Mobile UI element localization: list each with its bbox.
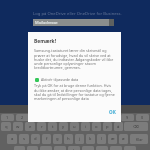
staticText: q [5, 124, 8, 130]
button[interactable]: m [96, 146, 108, 150]
staticText: å [117, 124, 120, 130]
staticText: k [89, 136, 92, 142]
staticText: OK [109, 109, 116, 115]
button[interactable]: , [110, 146, 122, 150]
staticText: e [29, 124, 32, 130]
button[interactable]: v [54, 146, 66, 150]
button[interactable]: z [14, 146, 25, 150]
staticText: u [73, 124, 76, 130]
button[interactable]: x [27, 146, 38, 150]
button[interactable]: Aktivér tilpassede data [34, 77, 79, 82]
staticText: Tryk på OK for at bruge denne funktion. … [34, 83, 116, 101]
button[interactable]: 9 [121, 114, 134, 121]
staticText: Samsung-tastaturet lærer din skrivestil … [34, 48, 116, 70]
staticText: æ [111, 136, 115, 142]
staticText: r [41, 124, 43, 130]
button[interactable]: s [19, 134, 29, 144]
staticText: b [73, 148, 76, 150]
button[interactable]: f [42, 134, 51, 144]
staticText: h [67, 136, 70, 142]
staticText: ⌫ [133, 124, 139, 129]
button[interactable]: b [68, 146, 80, 150]
staticText: p [106, 124, 109, 130]
button[interactable]: r [37, 122, 46, 131]
button[interactable]: o [92, 122, 101, 131]
staticText: 2 [21, 115, 24, 120]
button[interactable]: OK [109, 109, 116, 115]
button[interactable]: 0 [136, 114, 149, 121]
staticText: Mailadresse [35, 20, 58, 25]
staticText: y [62, 124, 65, 130]
staticText: t [52, 124, 54, 130]
button[interactable]: h [64, 134, 73, 144]
button[interactable]: w [13, 122, 23, 131]
staticText: j [79, 136, 81, 142]
staticText: 9 [126, 115, 129, 120]
staticText: a [11, 136, 14, 142]
button[interactable]: Klar [130, 134, 148, 144]
button[interactable]: ø [119, 134, 128, 144]
button[interactable]: Mailadresse [33, 19, 114, 26]
staticText: i [85, 124, 87, 130]
staticText: o [95, 124, 98, 130]
button[interactable]: g [53, 134, 62, 144]
staticText: d [34, 136, 37, 142]
button[interactable]: l [97, 134, 106, 144]
staticText: 0 [141, 115, 144, 120]
button[interactable]: k [86, 134, 95, 144]
staticText: Bemærk! [34, 38, 57, 45]
staticText: g [56, 136, 59, 142]
staticText: l [101, 136, 103, 142]
button[interactable]: å [114, 122, 123, 131]
button[interactable]: p [103, 122, 112, 131]
staticText: s [23, 136, 26, 142]
staticText: ø [122, 136, 125, 142]
button[interactable]: t [48, 122, 57, 131]
staticText: w [16, 124, 20, 130]
button[interactable]: . [124, 146, 136, 150]
button[interactable]: y [59, 122, 68, 131]
button[interactable]: j [75, 134, 84, 144]
button[interactable]: u [70, 122, 79, 131]
staticText: f [46, 136, 48, 142]
button[interactable]: c [40, 146, 52, 150]
staticText: 1 [6, 115, 9, 120]
button[interactable]: i [81, 122, 90, 131]
button[interactable]: 1 [1, 114, 14, 121]
staticText: Klar [136, 137, 143, 142]
staticText: Log på OneDrive eller OneDrive for Busin… [33, 11, 122, 17]
staticText: Aktivér tilpassede data [41, 77, 79, 82]
button[interactable]: Slet [124, 122, 148, 131]
button[interactable]: n [82, 146, 94, 150]
button[interactable]: q [1, 122, 11, 131]
button[interactable]: 2 [16, 114, 29, 121]
button[interactable]: e [25, 122, 35, 131]
button[interactable]: a [7, 134, 17, 144]
button[interactable]: æ [108, 134, 117, 144]
button[interactable]: d [31, 134, 40, 144]
